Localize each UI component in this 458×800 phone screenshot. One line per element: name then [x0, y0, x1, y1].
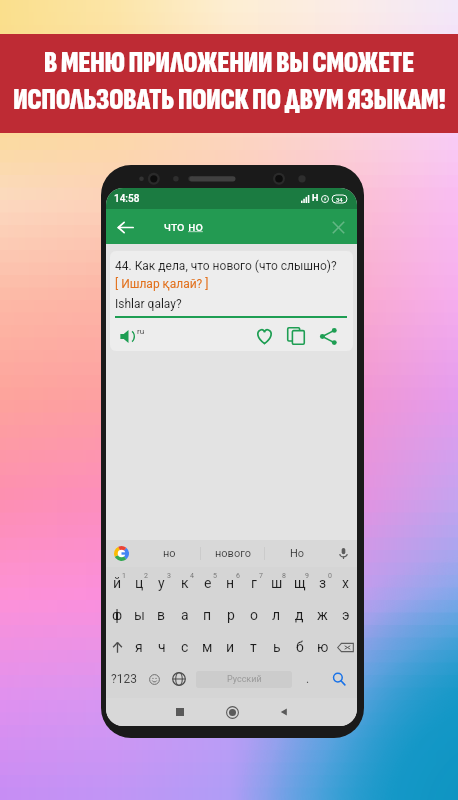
button[interactable]: .	[296, 663, 320, 695]
button[interactable]: нового	[201, 540, 265, 567]
button[interactable]: й	[106, 567, 128, 599]
button[interactable]: б	[288, 631, 311, 663]
button[interactable]: Search	[320, 663, 357, 695]
button[interactable]: 44. Как дела, что нового (что слышно)?	[110, 251, 353, 351]
button[interactable]: р	[219, 599, 242, 631]
staticText: ы	[134, 607, 145, 623]
staticText: й	[113, 575, 122, 591]
button[interactable]: ю	[311, 631, 334, 663]
staticText: В МЕНЮ ПРИЛОЖЕНИИ ВЫ СМОЖЕТЕ	[44, 45, 414, 81]
button[interactable]: э	[334, 599, 357, 631]
staticText: но	[188, 219, 203, 234]
staticText: л	[272, 607, 281, 623]
staticText: р	[227, 607, 235, 623]
staticText: з	[319, 575, 327, 591]
staticText: а	[181, 607, 189, 623]
staticText: нового	[215, 547, 251, 560]
button[interactable]: ф	[106, 599, 128, 631]
staticText: ш	[271, 575, 283, 591]
staticText: ?123	[111, 672, 137, 686]
staticText: и	[226, 639, 235, 655]
button[interactable]: к	[173, 567, 196, 599]
button[interactable]: с	[173, 631, 196, 663]
button[interactable]: Back	[111, 213, 139, 241]
staticText: 7	[259, 572, 263, 580]
staticText: ц	[135, 575, 144, 591]
staticText: 4	[190, 572, 194, 580]
button[interactable]: Share	[315, 323, 341, 349]
button[interactable]: е	[196, 567, 219, 599]
button[interactable]: Voice input	[329, 540, 357, 567]
button[interactable]: в	[150, 599, 173, 631]
staticText: с	[181, 639, 189, 655]
staticText: т	[250, 639, 257, 655]
staticText: г	[251, 575, 257, 591]
button[interactable]: Но	[265, 540, 329, 567]
button[interactable]: но	[137, 540, 201, 567]
button[interactable]: ?123	[106, 663, 142, 695]
button[interactable]: Русский	[196, 671, 292, 688]
button[interactable]: ж	[311, 599, 334, 631]
button[interactable]: Home	[218, 698, 246, 726]
button[interactable]: Google	[106, 540, 137, 567]
button[interactable]: а	[173, 599, 196, 631]
staticText: 5	[213, 572, 217, 580]
staticText: H	[312, 193, 319, 204]
staticText: 14:58	[114, 193, 140, 205]
button[interactable]: г	[242, 567, 265, 599]
button[interactable]: ц	[128, 567, 150, 599]
staticText: 6	[236, 572, 240, 580]
button[interactable]: ш	[265, 567, 288, 599]
button[interactable]: д	[288, 599, 311, 631]
staticText: 9	[305, 572, 309, 580]
button[interactable]: ы	[128, 599, 150, 631]
button[interactable]: л	[265, 599, 288, 631]
button[interactable]: х	[334, 567, 357, 599]
staticText: я	[135, 639, 143, 655]
button[interactable]: Back	[270, 698, 298, 726]
button[interactable]: Emoji	[142, 663, 166, 695]
staticText: [ Ишлар қалай? ]	[115, 277, 209, 291]
staticText: 44. Как дела, что нового (что слышно)?	[115, 259, 337, 273]
button[interactable]: у	[150, 567, 173, 599]
button[interactable]: п	[196, 599, 219, 631]
button[interactable]: Backspace	[334, 631, 357, 663]
staticText: .	[306, 672, 310, 686]
button[interactable]: м	[196, 631, 219, 663]
button[interactable]: з	[311, 567, 334, 599]
button[interactable]: Switch language	[166, 663, 192, 695]
staticText: е	[204, 575, 212, 591]
button[interactable]: ч	[150, 631, 173, 663]
staticText: п	[203, 607, 212, 623]
staticText: щ	[294, 575, 306, 591]
button[interactable]: н	[219, 567, 242, 599]
staticText: б	[296, 639, 304, 655]
button[interactable]: и	[219, 631, 242, 663]
staticText: Но	[290, 547, 305, 560]
staticText: м	[202, 639, 213, 655]
staticText: ru	[137, 327, 145, 336]
button[interactable]: т	[242, 631, 265, 663]
button[interactable]: я	[128, 631, 150, 663]
button[interactable]: ь	[265, 631, 288, 663]
staticText: 34	[336, 196, 343, 203]
staticText: Ishlar qalay?	[115, 297, 182, 311]
button[interactable]: Add to favorites	[251, 323, 277, 349]
staticText: ж	[317, 607, 328, 623]
staticText: ф	[112, 607, 123, 623]
staticText: в	[157, 607, 166, 623]
staticText: ь	[273, 639, 281, 655]
button[interactable]: Recents	[166, 698, 194, 726]
staticText: н	[226, 575, 235, 591]
button[interactable]: Copy	[283, 323, 309, 349]
button[interactable]: о	[242, 599, 265, 631]
staticText: х	[342, 575, 349, 591]
staticText: 2	[144, 572, 148, 580]
staticText: ч	[158, 639, 166, 655]
button[interactable]: Play audio	[116, 324, 140, 348]
button[interactable]: щ	[288, 567, 311, 599]
button[interactable]: Shift	[106, 631, 128, 663]
button[interactable]: Clear	[324, 213, 352, 241]
staticText: 3	[167, 572, 171, 580]
staticText: о	[250, 607, 258, 623]
